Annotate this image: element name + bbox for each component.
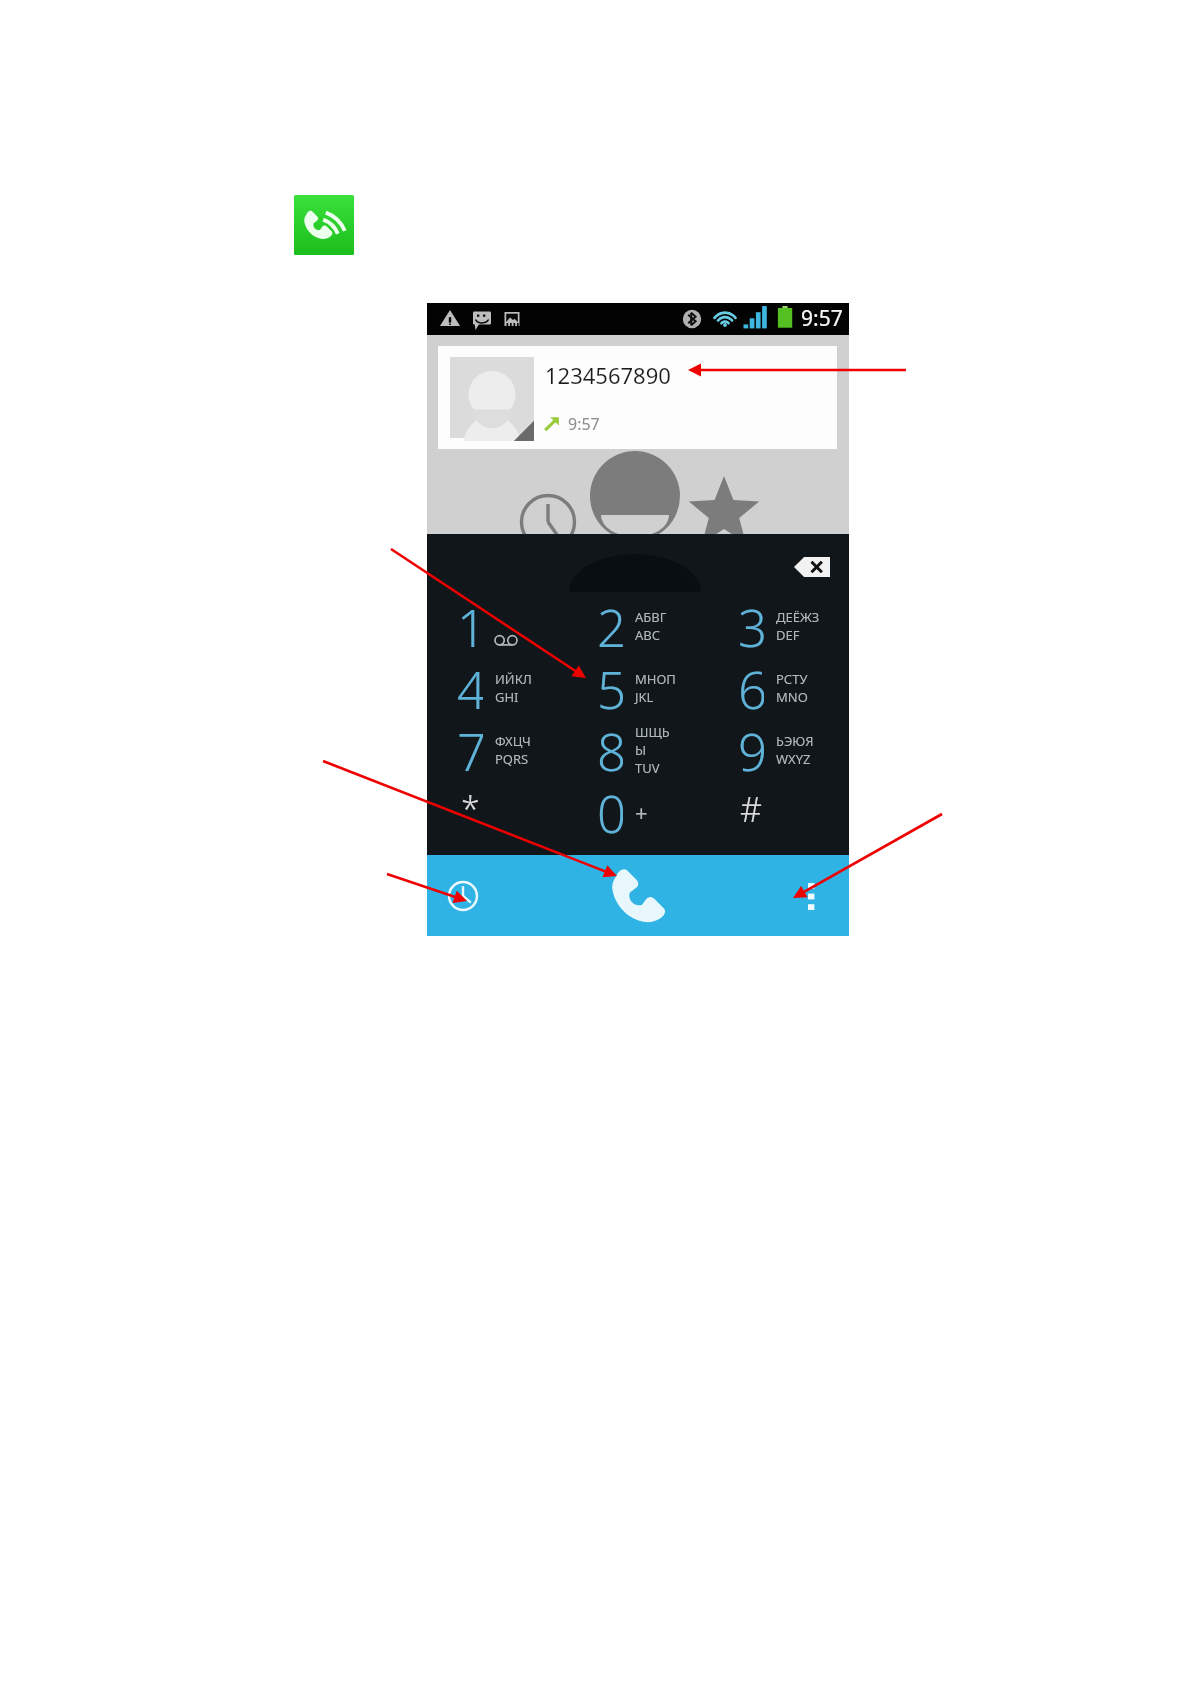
staticText: ЬЭЮЯ: [776, 732, 814, 750]
staticText: #: [740, 786, 762, 832]
button[interactable]: 9: [708, 716, 849, 778]
staticText: TUV: [635, 759, 660, 777]
staticText: ФХЦЧ: [495, 732, 531, 750]
button[interactable]: #: [708, 778, 849, 840]
button[interactable]: Recents tab: [427, 462, 567, 534]
staticText: ДЕЁЖЗ: [776, 608, 820, 626]
button[interactable]: 1: [427, 592, 567, 654]
staticText: *: [461, 786, 480, 832]
button[interactable]: 7: [427, 716, 567, 778]
button[interactable]: Phone app icon: [294, 195, 354, 255]
button[interactable]: Call: [567, 855, 708, 936]
staticText: GHI: [495, 688, 519, 706]
staticText: 9: [738, 716, 764, 778]
staticText: 3: [738, 592, 764, 654]
button[interactable]: 1234567890: [438, 346, 837, 449]
staticText: ИЙКЛ: [495, 670, 532, 688]
staticText: JKL: [635, 688, 654, 706]
staticText: 1234567890: [545, 360, 671, 390]
staticText: РСТУ: [776, 670, 808, 688]
button[interactable]: Contacts tab: [567, 462, 708, 534]
staticText: ABC: [635, 626, 660, 644]
button[interactable]: Backspace: [794, 557, 830, 577]
staticText: +: [635, 797, 648, 827]
staticText: 4: [457, 654, 483, 716]
staticText: PQRS: [495, 750, 529, 768]
staticText: 0: [597, 778, 623, 840]
staticText: WXYZ: [776, 750, 811, 768]
staticText: 2: [597, 592, 623, 654]
staticText: АБВГ: [635, 608, 667, 626]
staticText: МНОП: [635, 670, 676, 688]
button[interactable]: Call history: [427, 855, 567, 936]
staticText: ШЩЬ Ы: [635, 723, 670, 759]
staticText: 5: [597, 654, 623, 716]
staticText: 9:57: [801, 304, 843, 333]
button[interactable]: 3: [708, 592, 849, 654]
staticText: 8: [597, 716, 623, 778]
staticText: 6: [738, 654, 764, 716]
button[interactable]: 8: [567, 716, 708, 778]
button[interactable]: Favourites tab: [708, 462, 849, 534]
button[interactable]: 6: [708, 654, 849, 716]
button[interactable]: 5: [567, 654, 708, 716]
staticText: 7: [457, 716, 483, 778]
button[interactable]: 2: [567, 592, 708, 654]
button[interactable]: 0: [567, 778, 708, 840]
button[interactable]: 4: [427, 654, 567, 716]
staticText: DEF: [776, 626, 800, 644]
button[interactable]: *: [427, 778, 567, 840]
button[interactable]: More options: [708, 855, 849, 936]
staticText: 9:57: [568, 413, 600, 435]
staticText: MNO: [776, 688, 808, 706]
staticText: 1: [457, 592, 483, 654]
